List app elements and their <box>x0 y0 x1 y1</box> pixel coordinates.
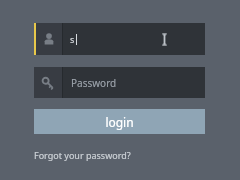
button[interactable]: Password <box>34 67 205 98</box>
staticText: s <box>70 33 75 45</box>
button[interactable]: s <box>34 23 205 55</box>
staticText: Password <box>71 76 117 90</box>
staticText: Forgot your password? <box>34 149 131 161</box>
staticText: login <box>105 114 134 130</box>
button[interactable]: login <box>34 109 205 134</box>
button[interactable]: Forgot your password? <box>34 148 131 162</box>
